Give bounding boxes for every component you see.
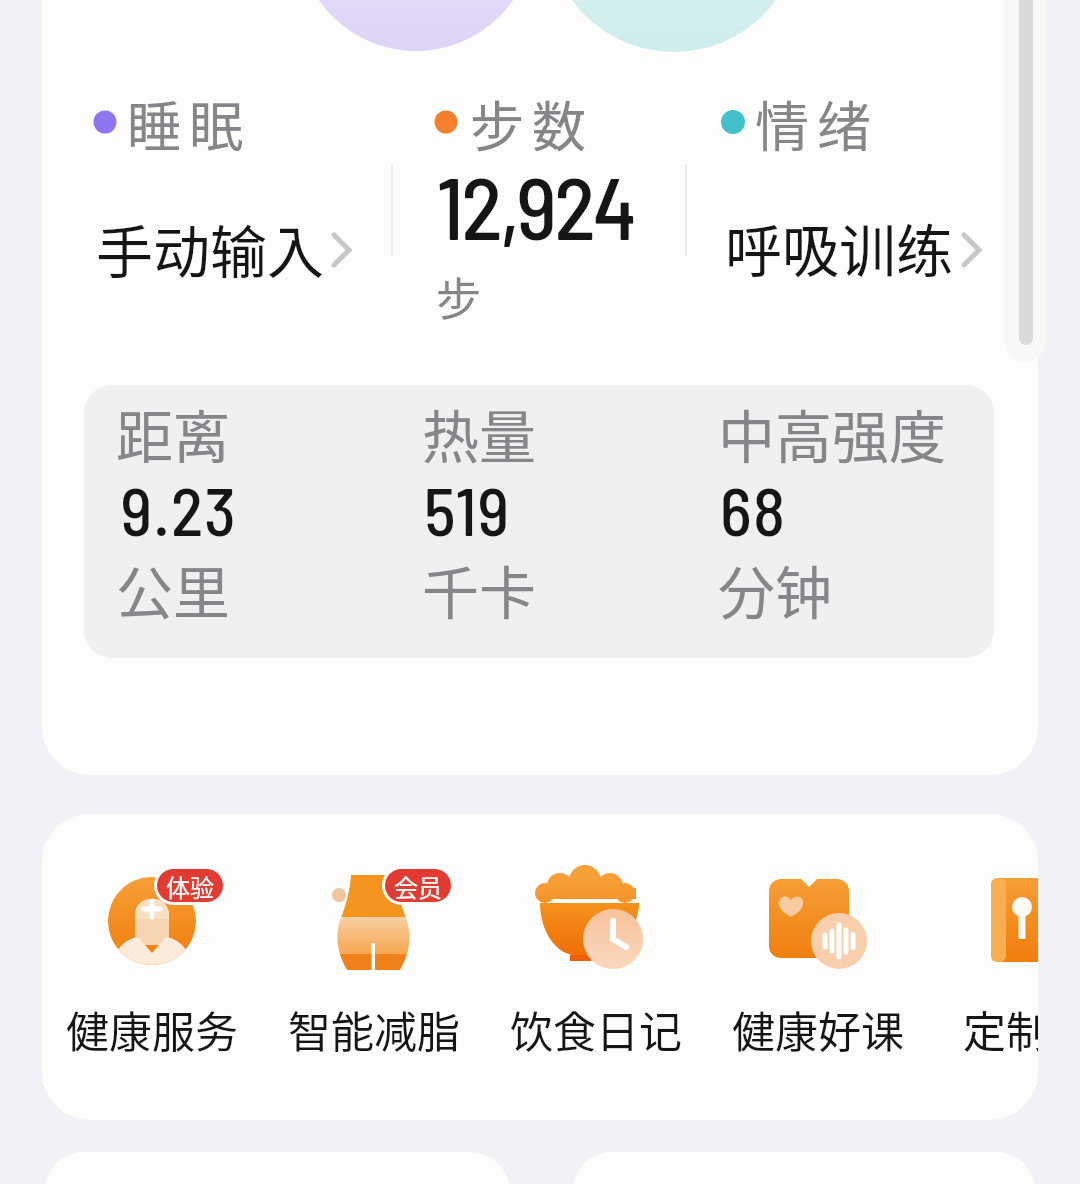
button[interactable]	[496, 854, 696, 1074]
staticText: 公里	[116, 548, 230, 631]
staticText: 健康好课	[732, 998, 904, 1060]
staticText: 9.23	[121, 469, 238, 549]
staticText: 12,924	[437, 154, 634, 257]
staticText: 千卡	[422, 548, 536, 631]
staticText: 热量	[422, 392, 536, 475]
staticText: 会员	[394, 869, 442, 902]
staticText: 68	[720, 469, 787, 549]
staticText: 饮食日记	[510, 998, 682, 1060]
staticText: 情绪	[755, 84, 879, 162]
staticText: 中高强度	[718, 392, 946, 475]
button[interactable]	[52, 854, 252, 1074]
staticText: 定制计划	[963, 998, 1038, 1060]
staticText: 手动输入	[96, 207, 324, 290]
button[interactable]	[90, 200, 370, 300]
staticText: 呼吸训练	[725, 206, 953, 289]
staticText: 体验	[166, 869, 214, 902]
staticText: 距离	[116, 392, 230, 475]
staticText: 睡眠	[127, 84, 251, 162]
button[interactable]	[718, 854, 918, 1074]
button[interactable]	[274, 854, 474, 1074]
staticText: 健康服务	[66, 998, 238, 1060]
staticText: 步	[436, 264, 482, 329]
staticText: 步数	[470, 84, 594, 162]
button[interactable]	[84, 385, 994, 658]
staticText: 分钟	[718, 548, 832, 631]
staticText: 519	[424, 469, 511, 549]
button[interactable]	[430, 150, 650, 330]
button[interactable]	[720, 200, 1000, 300]
staticText: 智能减脂	[288, 998, 460, 1060]
button[interactable]	[940, 854, 1038, 1074]
